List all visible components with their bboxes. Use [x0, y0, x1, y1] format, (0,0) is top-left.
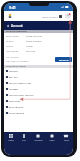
staticText: ACCOUNT SETTINGS — [6, 65, 26, 68]
button[interactable]: BANK PROFILE — [4, 110, 73, 116]
staticText: EDIT PROFILE — [9, 106, 24, 109]
button[interactable]: Home — [4, 132, 17, 155]
button[interactable]: RELOAD — [55, 57, 72, 62]
staticText: MYDEBIT — [9, 88, 19, 91]
staticText: RELOAD — [59, 58, 69, 61]
button[interactable]: Bank logo — [7, 13, 13, 19]
button[interactable]: Menu — [59, 15, 62, 18]
button[interactable]: Back — [6, 24, 10, 28]
staticText: Last Login 10/10/2024 — [6, 60, 29, 63]
staticText: Total funds — [6, 49, 19, 52]
staticText: 9:41 — [9, 5, 16, 10]
button[interactable]: Pay — [17, 132, 31, 155]
staticText: VIRTUAL DEBIT CARD — [9, 82, 32, 85]
button[interactable]: BRANCHES — [4, 98, 73, 104]
button[interactable]: VIRTUAL DEBIT CARD — [4, 80, 73, 86]
staticText: Active — [26, 44, 33, 47]
staticText: Accounts — [34, 139, 43, 142]
button[interactable]: MYDEBIT — [4, 86, 73, 92]
staticText: TRANSACTION HISTORY — [9, 94, 34, 97]
staticText: CIMB ISLAMIC — [26, 34, 43, 37]
staticText: ACCOUNT OVERVIEW — [6, 30, 27, 33]
button[interactable]: EDIT PROFILE — [4, 104, 73, 110]
button[interactable]: Open account — [42, 15, 58, 18]
staticText: DEPOSIT — [9, 70, 19, 73]
staticText: Branch — [6, 39, 14, 42]
staticText: BANK PROFILE — [9, 112, 25, 115]
staticText: No. Account — [6, 56, 19, 59]
button[interactable]: Apply — [45, 132, 59, 155]
button[interactable]: DEPOSIT — [4, 68, 73, 74]
staticText: Kuala Lumpur — [26, 39, 42, 42]
button[interactable]: TRANSACTION HISTORY — [4, 92, 73, 98]
staticText: BRANCHES — [9, 100, 21, 103]
button[interactable]: BILL PAY — [4, 74, 73, 80]
button[interactable]: Accounts — [31, 132, 45, 155]
staticText: Home — [8, 139, 14, 142]
staticText: Bank name — [6, 34, 19, 37]
staticText: More — [64, 139, 69, 142]
staticText: Pay — [22, 139, 26, 142]
staticText: Account — [11, 24, 23, 28]
button[interactable]: Profile notifications — [65, 13, 71, 19]
staticText: Apply — [49, 139, 55, 142]
button[interactable]: More — [59, 132, 73, 155]
staticText: BILL PAY — [9, 76, 18, 79]
staticText: Status — [6, 44, 14, 47]
staticText: RM 0.00 — [26, 49, 36, 52]
